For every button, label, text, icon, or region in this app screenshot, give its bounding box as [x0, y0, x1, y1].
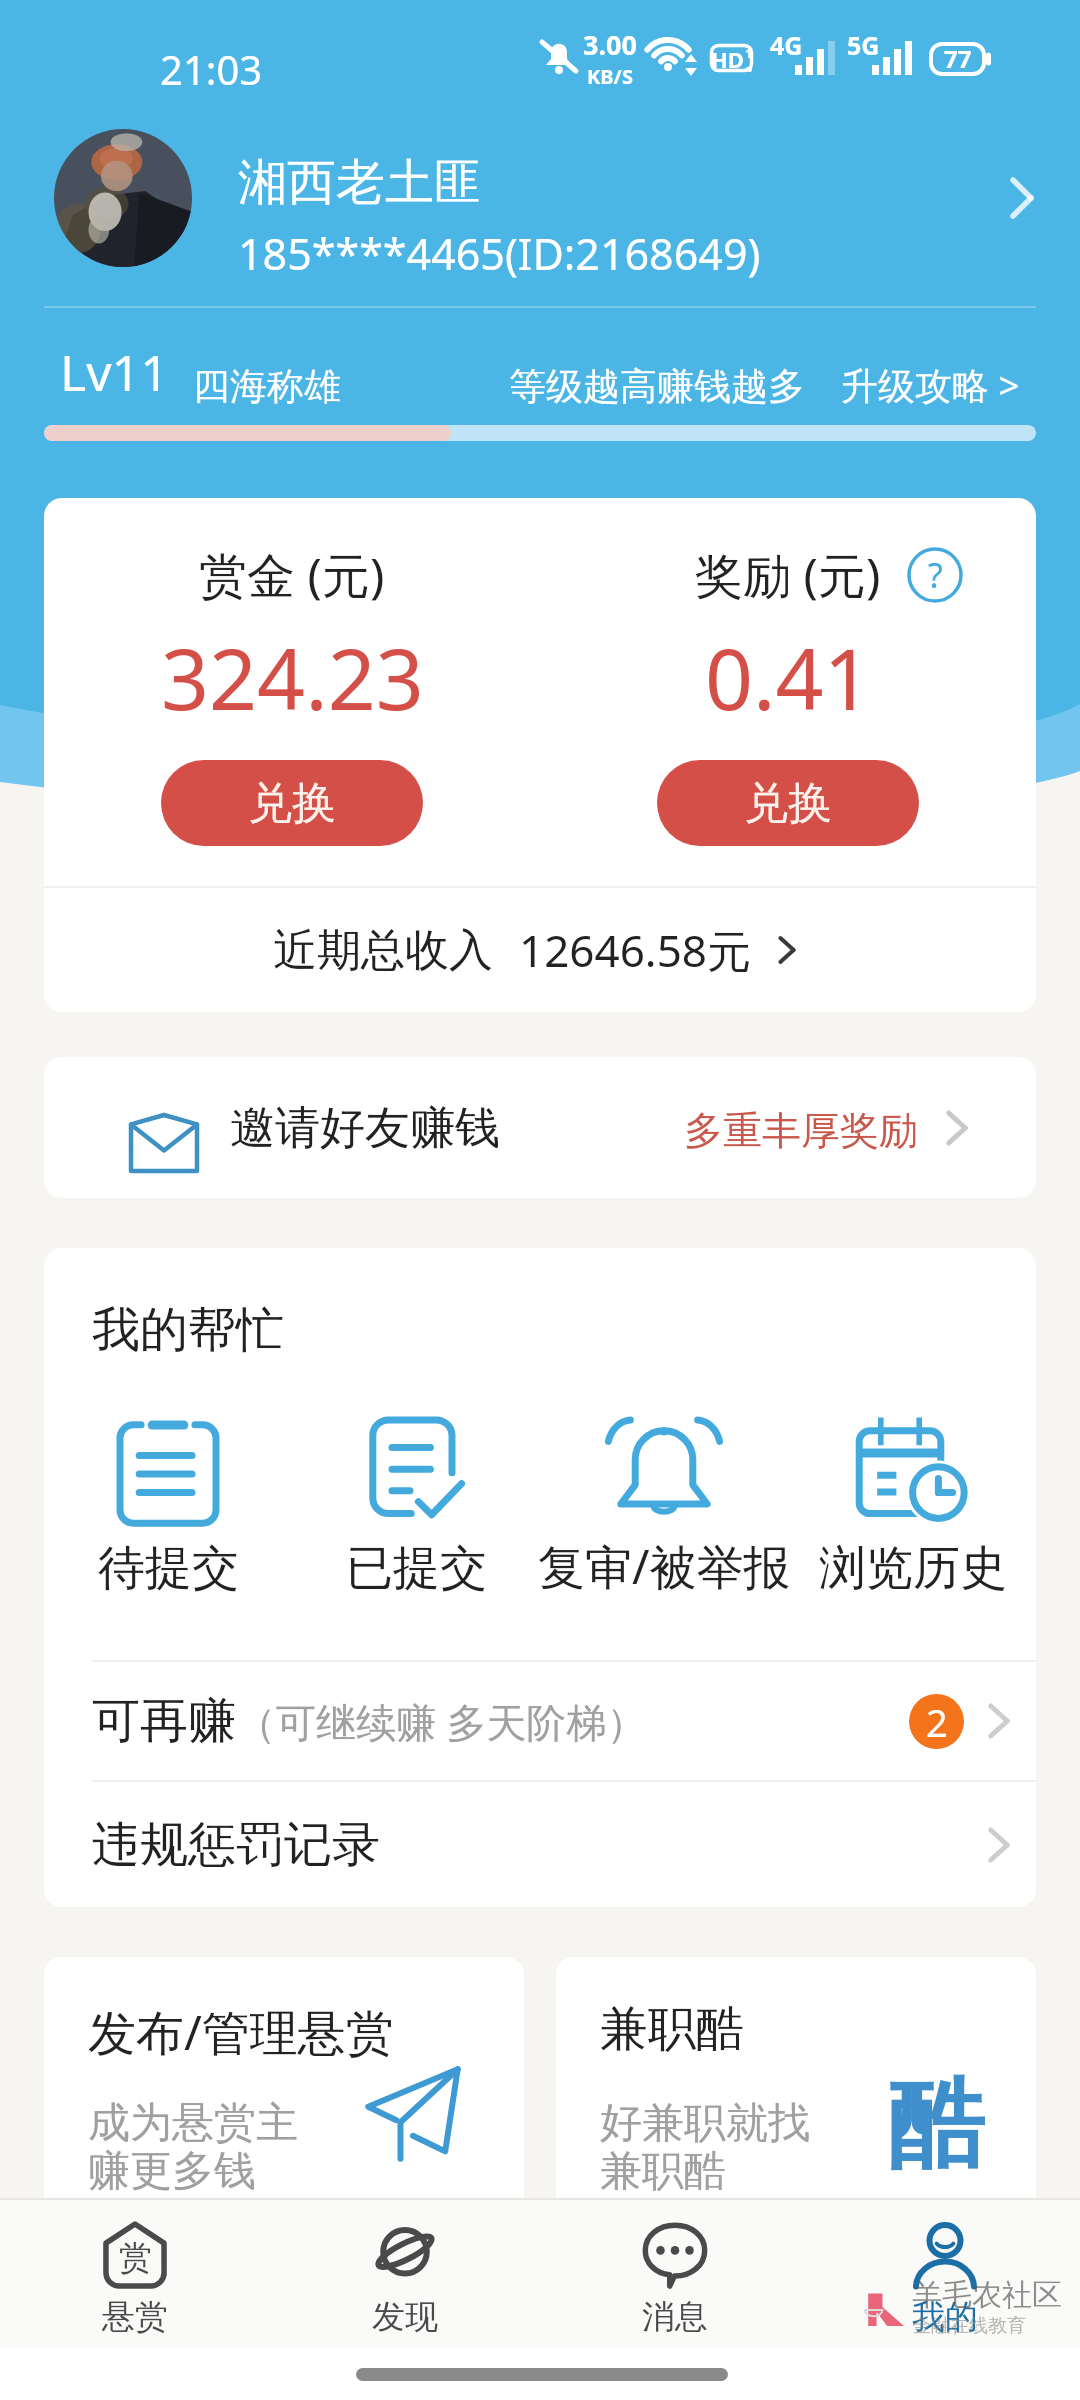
- button[interactable]: 违规惩罚记录: [44, 1782, 1036, 1907]
- staticText: 升级攻略 >: [841, 359, 1020, 410]
- staticText: 我的: [912, 2296, 978, 2338]
- staticText: 兼职酷: [600, 2145, 726, 2198]
- staticText: 浏览历史: [819, 1539, 1007, 1598]
- button[interactable]: 可再赚: [44, 1662, 1036, 1780]
- button[interactable]: Help: [907, 547, 963, 603]
- staticText: 待提交: [98, 1539, 239, 1598]
- button[interactable]: 发布/管理悬赏: [44, 1957, 524, 2247]
- staticText: 悬赏: [102, 2296, 168, 2338]
- staticText: 兑换: [248, 776, 336, 831]
- staticText: KB/S: [587, 63, 633, 90]
- button[interactable]: 消息: [540, 2200, 810, 2348]
- staticText: 185****4465(ID:2168649): [238, 224, 761, 283]
- staticText: 多重丰厚奖励: [684, 1106, 918, 1155]
- staticText: 羊毛农社区: [912, 2276, 1062, 2314]
- other: Profile details: [994, 170, 1050, 226]
- staticText: 金融在线教育: [912, 2314, 1026, 2338]
- button[interactable]: 复审/被举报: [540, 1406, 788, 1598]
- staticText: 21:03: [160, 42, 263, 96]
- staticText: 酷: [888, 2065, 984, 2186]
- staticText: HD: [711, 44, 744, 72]
- staticText: 324.23: [161, 620, 424, 734]
- staticText: 赚更多钱: [88, 2145, 256, 2198]
- staticText: Lv11: [60, 338, 169, 406]
- staticText: 赏: [119, 2237, 152, 2279]
- staticText: 兼职酷: [600, 1999, 744, 2059]
- staticText: （可继续赚 多天阶梯）: [236, 1694, 647, 1749]
- staticText: 奖励 (元): [695, 542, 881, 608]
- button[interactable]: 赏: [0, 2200, 270, 2348]
- staticText: 1: [745, 44, 753, 62]
- staticText: 可再赚: [92, 1691, 236, 1751]
- staticText: 3.00: [583, 26, 637, 63]
- button[interactable]: 邀请好友赚钱: [44, 1057, 1036, 1198]
- staticText: 已提交: [346, 1539, 487, 1598]
- staticText: 0.41: [705, 620, 872, 734]
- button[interactable]: 兑换: [657, 760, 919, 846]
- staticText: 发布/管理悬赏: [88, 1999, 394, 2065]
- staticText: 邀请好友赚钱: [230, 1100, 500, 1157]
- staticText: 好兼职就找: [600, 2097, 810, 2150]
- button[interactable]: 已提交: [292, 1406, 540, 1598]
- staticText: 我的帮忙: [92, 1300, 284, 1360]
- button[interactable]: 浏览历史: [788, 1406, 1036, 1598]
- staticText: 复审/被举报: [538, 1534, 791, 1598]
- staticText: ?: [928, 552, 943, 598]
- button[interactable]: 发现: [270, 2200, 540, 2348]
- staticText: 12646.58元: [519, 920, 751, 980]
- staticText: 近期总收入: [273, 923, 493, 978]
- button[interactable]: 升级攻略 >: [841, 359, 1020, 410]
- staticText: 2: [926, 1696, 948, 1748]
- staticText: 四海称雄: [193, 363, 341, 410]
- staticText: 湘西老土匪: [238, 152, 483, 214]
- staticText: 兑换: [744, 776, 832, 831]
- staticText: 4G: [770, 28, 803, 62]
- staticText: 赏金 (元): [199, 542, 385, 608]
- staticText: 5G: [847, 28, 880, 62]
- button[interactable]: 兑换: [161, 760, 423, 846]
- button[interactable]: 兼职酷: [556, 1957, 1036, 2247]
- staticText: 等级越高赚钱越多: [509, 363, 805, 410]
- button[interactable]: 近期总收入: [44, 888, 1036, 1012]
- button[interactable]: 待提交: [44, 1406, 292, 1598]
- staticText: 消息: [642, 2296, 708, 2338]
- staticText: 2: [745, 62, 753, 72]
- staticText: 成为悬赏主: [88, 2097, 298, 2150]
- button[interactable]: 湘西老土匪: [0, 128, 1080, 268]
- button[interactable]: 我的: [810, 2200, 1080, 2348]
- staticText: 77: [944, 42, 972, 75]
- staticText: 发现: [372, 2296, 438, 2338]
- staticText: 违规惩罚记录: [92, 1815, 380, 1875]
